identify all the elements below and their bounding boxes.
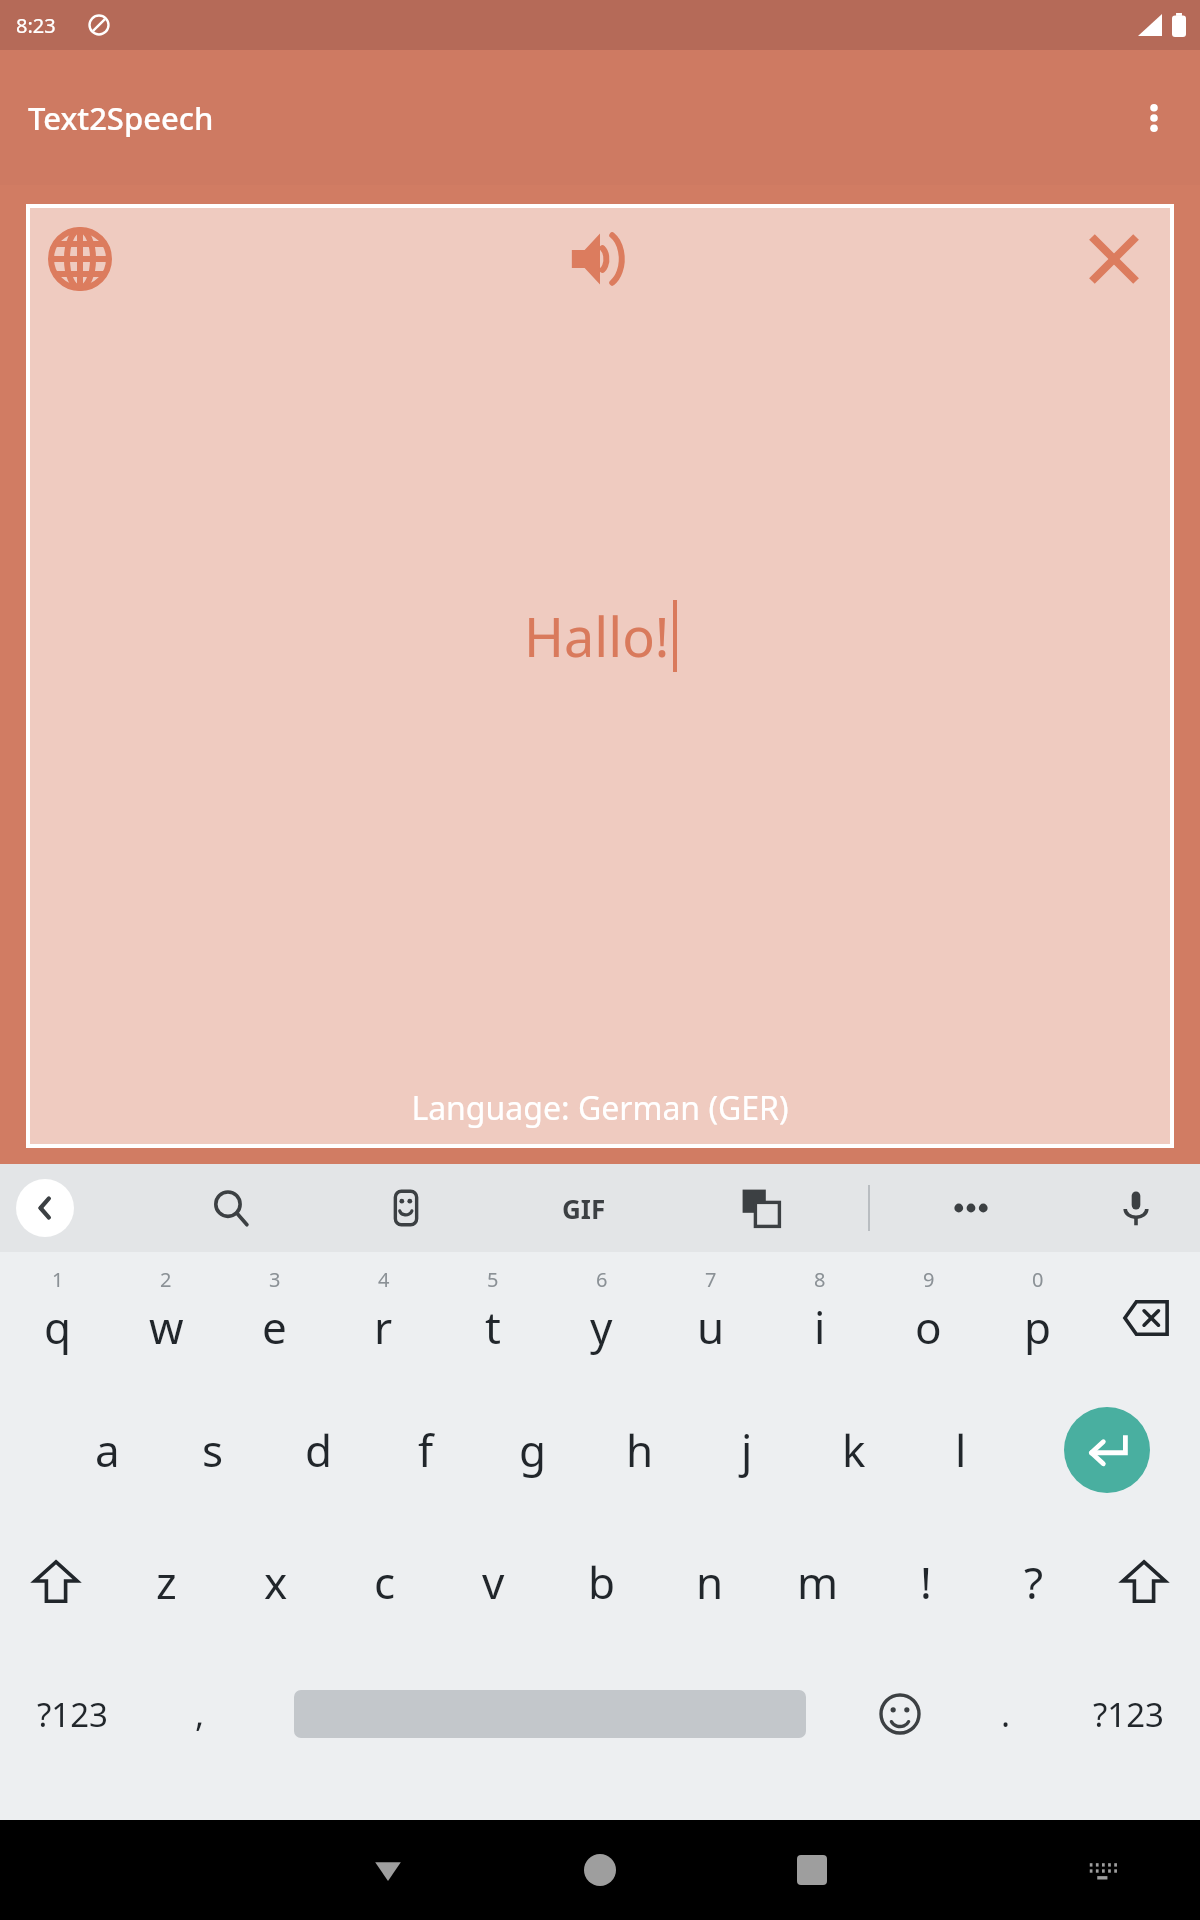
staticText: c: [374, 1552, 396, 1612]
button[interactable]: .: [956, 1648, 1056, 1780]
button[interactable]: Back: [16, 1179, 74, 1237]
button[interactable]: ,: [144, 1648, 256, 1780]
button[interactable]: Voice input: [1104, 1176, 1168, 1240]
button[interactable]: ?123: [1056, 1648, 1200, 1780]
button[interactable]: s: [160, 1384, 266, 1516]
staticText: r: [374, 1297, 393, 1357]
button[interactable]: Shift: [0, 1516, 112, 1648]
button[interactable]: Stickers: [375, 1177, 437, 1239]
button[interactable]: z: [112, 1516, 221, 1648]
staticText: t: [485, 1297, 501, 1357]
staticText: Hallo!: [524, 599, 670, 673]
staticText: ?: [1024, 1552, 1044, 1612]
staticText: h: [626, 1420, 654, 1480]
staticText: 2: [160, 1266, 172, 1293]
staticText: ?123: [1093, 1692, 1164, 1737]
staticText: x: [264, 1552, 288, 1612]
button[interactable]: Emoji: [844, 1648, 956, 1780]
staticText: e: [262, 1297, 287, 1357]
staticText: 1: [52, 1266, 64, 1293]
staticText: w: [149, 1297, 184, 1357]
staticText: q: [44, 1297, 72, 1357]
button[interactable]: Search: [200, 1177, 262, 1239]
staticText: u: [697, 1297, 725, 1357]
button[interactable]: 2: [112, 1252, 220, 1384]
button[interactable]: 9: [874, 1252, 983, 1384]
staticText: i: [814, 1297, 826, 1357]
button[interactable]: More options: [1124, 88, 1184, 148]
button[interactable]: c: [330, 1516, 439, 1648]
staticText: y: [590, 1297, 613, 1357]
button[interactable]: Hide keyboard: [1066, 1834, 1138, 1906]
staticText: 8: [814, 1266, 826, 1293]
staticText: f: [418, 1420, 434, 1480]
button[interactable]: Back: [352, 1834, 424, 1906]
button[interactable]: ?123: [0, 1648, 144, 1780]
staticText: z: [156, 1552, 177, 1612]
button[interactable]: d: [266, 1384, 372, 1516]
staticText: 6: [596, 1266, 608, 1293]
button[interactable]: Change language: [38, 217, 122, 301]
staticText: a: [95, 1420, 120, 1480]
staticText: 5: [487, 1266, 499, 1293]
button[interactable]: b: [548, 1516, 656, 1648]
staticText: .: [1001, 1691, 1011, 1737]
button[interactable]: l: [907, 1384, 1014, 1516]
staticText: v: [482, 1552, 505, 1612]
staticText: 7: [705, 1266, 717, 1293]
button[interactable]: n: [656, 1516, 764, 1648]
staticText: m: [797, 1552, 839, 1612]
button[interactable]: x: [221, 1516, 330, 1648]
button[interactable]: v: [439, 1516, 548, 1648]
button[interactable]: Recent apps: [776, 1834, 848, 1906]
button[interactable]: 7: [656, 1252, 765, 1384]
staticText: ,: [195, 1691, 205, 1737]
staticText: l: [955, 1420, 967, 1480]
button[interactable]: 6: [547, 1252, 656, 1384]
staticText: b: [588, 1552, 616, 1612]
staticText: GIF: [562, 1191, 606, 1226]
button[interactable]: h: [586, 1384, 693, 1516]
button[interactable]: Backspace: [1092, 1252, 1200, 1384]
button[interactable]: 1: [4, 1252, 112, 1384]
staticText: 4: [378, 1266, 390, 1293]
staticText: p: [1024, 1297, 1052, 1357]
staticText: g: [519, 1420, 547, 1480]
staticText: Language: German (GER): [411, 1086, 789, 1130]
staticText: d: [305, 1420, 333, 1480]
staticText: 9: [923, 1266, 935, 1293]
staticText: j: [741, 1420, 753, 1480]
staticText: 0: [1032, 1266, 1044, 1293]
button[interactable]: j: [693, 1384, 800, 1516]
button[interactable]: 3: [220, 1252, 329, 1384]
button[interactable]: 4: [329, 1252, 438, 1384]
button[interactable]: Speak: [558, 217, 642, 301]
button[interactable]: [256, 1648, 844, 1780]
staticText: k: [842, 1420, 866, 1480]
staticText: n: [696, 1552, 724, 1612]
button[interactable]: ?: [980, 1516, 1088, 1648]
button[interactable]: 0: [983, 1252, 1092, 1384]
staticText: !: [920, 1552, 932, 1612]
button[interactable]: Enter: [1064, 1407, 1150, 1493]
button[interactable]: g: [479, 1384, 586, 1516]
button[interactable]: m: [764, 1516, 872, 1648]
staticText: ?123: [37, 1692, 108, 1737]
button[interactable]: !: [872, 1516, 980, 1648]
staticText: Text2Speech: [28, 97, 214, 139]
staticText: s: [202, 1420, 224, 1480]
button[interactable]: k: [800, 1384, 907, 1516]
button[interactable]: Clear text: [1072, 217, 1156, 301]
button[interactable]: Shift: [1088, 1516, 1200, 1648]
button[interactable]: More options: [938, 1175, 1004, 1241]
staticText: o: [915, 1297, 942, 1357]
button[interactable]: Home: [564, 1834, 636, 1906]
button[interactable]: a: [54, 1384, 160, 1516]
button[interactable]: 8: [765, 1252, 874, 1384]
button[interactable]: f: [372, 1384, 479, 1516]
staticText: 8:23: [16, 12, 56, 39]
button[interactable]: Translate: [730, 1177, 792, 1239]
button[interactable]: GIF: [548, 1172, 620, 1244]
staticText: 3: [269, 1266, 281, 1293]
button[interactable]: 5: [438, 1252, 547, 1384]
